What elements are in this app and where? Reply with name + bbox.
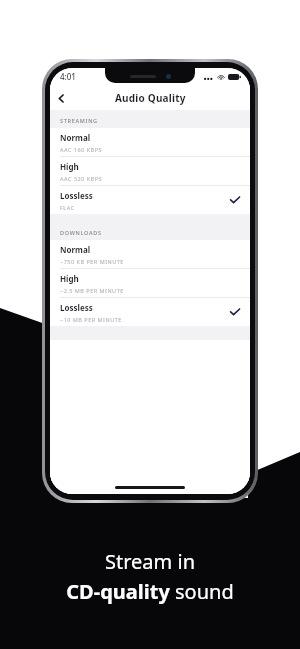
staticText: Lossless	[60, 190, 93, 201]
staticText: Normal	[60, 132, 91, 143]
staticText: ~10 MB PER MINUTE	[60, 316, 122, 323]
staticText: Audio Quality	[115, 91, 186, 105]
button[interactable]: Lossless	[50, 186, 250, 214]
staticText: Stream in	[105, 548, 195, 575]
staticText: AAC 160 KBPS	[60, 146, 103, 153]
staticText: CD-quality sound	[66, 578, 234, 605]
staticText: DOWNLOADS	[60, 229, 102, 236]
staticText: Normal	[60, 244, 91, 255]
staticText: STREAMING	[60, 117, 98, 124]
staticText: ~750 KB PER MINUTE	[60, 258, 124, 265]
staticText: AAC 320 KBPS	[60, 175, 103, 182]
button[interactable]: High	[50, 269, 250, 297]
staticText: Lossless	[60, 302, 93, 313]
button[interactable]: Normal	[50, 240, 250, 268]
button[interactable]: Back	[50, 87, 72, 109]
staticText: FLAC	[60, 204, 75, 211]
staticText: High	[60, 161, 79, 172]
button[interactable]: Lossless	[50, 298, 250, 326]
button[interactable]: Normal	[50, 128, 250, 156]
staticText: High	[60, 273, 79, 284]
staticText: 4:01	[60, 71, 76, 82]
button[interactable]: High	[50, 157, 250, 185]
staticText: ~2.5 MB PER MINUTE	[60, 287, 124, 294]
